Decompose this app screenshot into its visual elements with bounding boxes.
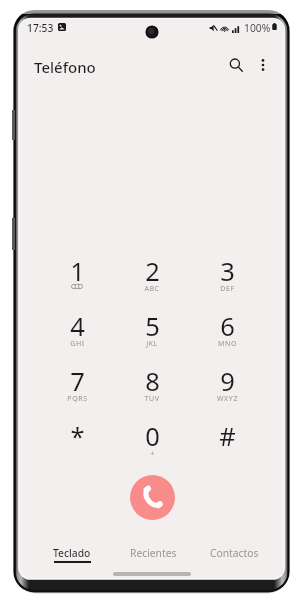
button[interactable]: Recientes (113, 546, 194, 564)
staticText: GHI (70, 339, 85, 349)
staticText: 3 (220, 254, 235, 289)
button[interactable]: More options (249, 51, 277, 79)
button[interactable]: Teclado (31, 546, 113, 564)
button[interactable]: # (201, 419, 253, 467)
staticText: Contactos (210, 546, 259, 560)
button[interactable]: 9 (201, 364, 253, 412)
staticText: 100% (244, 21, 271, 35)
staticText: 4 (70, 309, 85, 344)
staticText: 2 (145, 254, 160, 289)
staticText: 9 (220, 364, 235, 399)
staticText: + (150, 449, 155, 459)
staticText: DEF (220, 284, 235, 294)
button[interactable]: 3 (201, 254, 253, 302)
button[interactable]: 1 (51, 254, 103, 302)
staticText: TUV (144, 394, 160, 404)
staticText: Recientes (130, 546, 177, 560)
staticText: MNO (218, 339, 237, 349)
button[interactable]: 5 (126, 309, 178, 357)
staticText: 1 (70, 254, 85, 289)
button[interactable]: * (51, 419, 103, 467)
staticText: WXYZ (217, 394, 238, 404)
staticText: Teclado (53, 546, 91, 560)
staticText: 6 (220, 309, 235, 344)
button[interactable]: 6 (201, 309, 253, 357)
button[interactable]: Contactos (194, 546, 275, 564)
button[interactable]: 4 (51, 309, 103, 357)
button[interactable]: 7 (51, 364, 103, 412)
staticText: 7 (70, 364, 85, 399)
staticText: JKL (146, 339, 158, 349)
staticText: ABC (144, 284, 160, 294)
staticText: 17:53 (27, 21, 54, 35)
staticText: * (70, 419, 85, 454)
button[interactable]: Call (130, 475, 175, 520)
staticText: PQRS (67, 394, 88, 404)
staticText: 8 (145, 364, 160, 399)
staticText: 5 (145, 309, 160, 344)
button[interactable]: 8 (126, 364, 178, 412)
button[interactable]: Search (222, 51, 250, 79)
staticText: Teléfono (34, 57, 96, 77)
staticText: 0 (145, 419, 160, 454)
staticText: # (219, 419, 236, 454)
button[interactable]: 0 (126, 419, 178, 467)
button[interactable]: 2 (126, 254, 178, 302)
